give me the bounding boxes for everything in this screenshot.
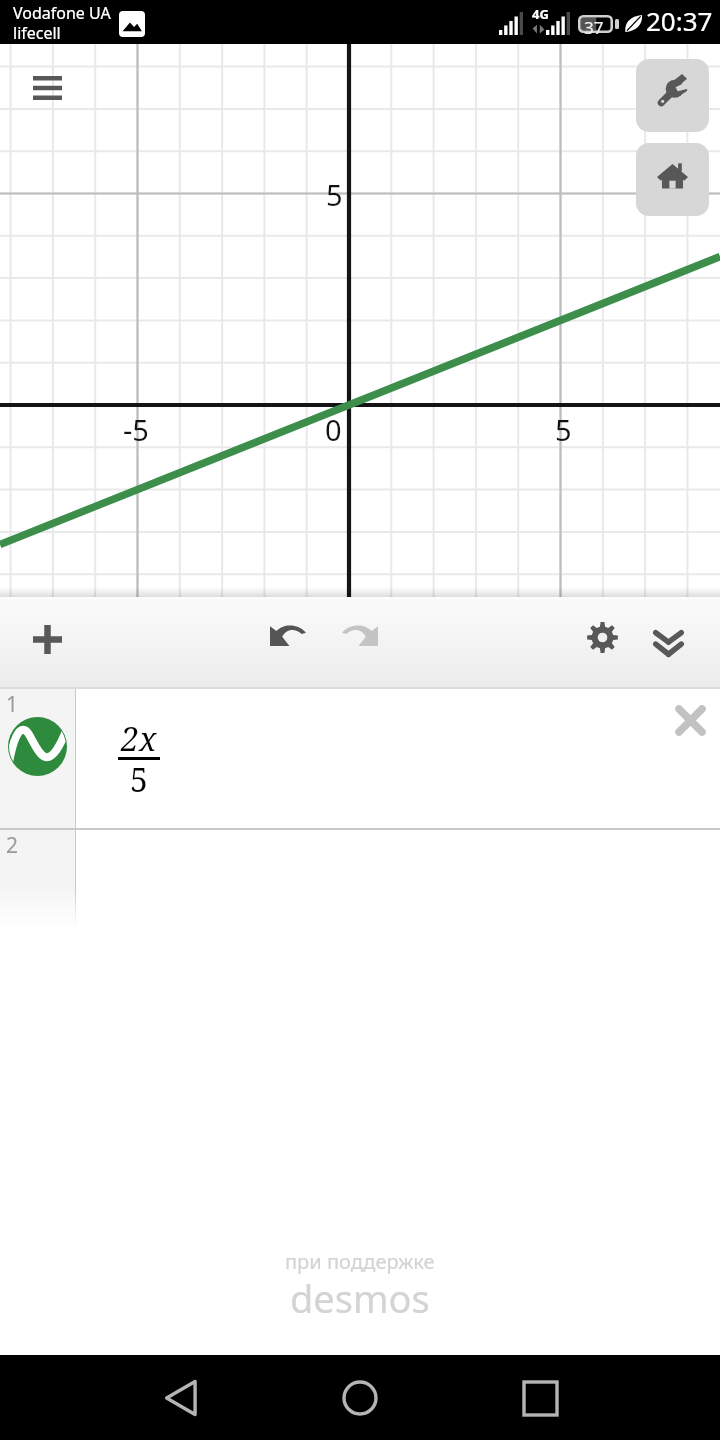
staticText: 5 — [130, 758, 148, 802]
staticText: 20:37 — [646, 3, 713, 38]
staticText: 5 — [555, 410, 572, 449]
button[interactable]: Home — [325, 1363, 395, 1433]
button[interactable]: 1 — [0, 689, 720, 828]
staticText: 2x — [121, 717, 157, 761]
button[interactable]: Delete expression — [664, 694, 716, 746]
staticText: 1 — [6, 690, 19, 719]
staticText: 5 — [326, 175, 343, 214]
button[interactable]: Home view — [636, 143, 709, 216]
staticText: 4G — [532, 5, 549, 23]
staticText: при поддержке — [285, 1248, 435, 1275]
button[interactable]: Collapse panel — [637, 610, 699, 672]
staticText: 2 — [6, 831, 19, 860]
button[interactable]: Settings — [571, 606, 633, 668]
button[interactable]: Menu — [21, 62, 73, 114]
button[interactable]: Tools — [636, 59, 709, 132]
button[interactable]: Recent apps — [505, 1363, 575, 1433]
staticText: lifecell — [13, 22, 61, 44]
staticText: 37 — [584, 16, 604, 39]
staticText: Vodafone UA — [13, 2, 111, 24]
staticText: -5 — [123, 410, 149, 449]
button[interactable]: Add expression — [16, 607, 78, 669]
staticText: 0 — [325, 410, 342, 449]
button[interactable]: 2 — [0, 830, 720, 929]
button[interactable]: Undo — [256, 601, 320, 665]
button[interactable]: Redo — [328, 601, 392, 665]
staticText: desmos — [290, 1272, 430, 1324]
button[interactable]: Back — [146, 1363, 216, 1433]
